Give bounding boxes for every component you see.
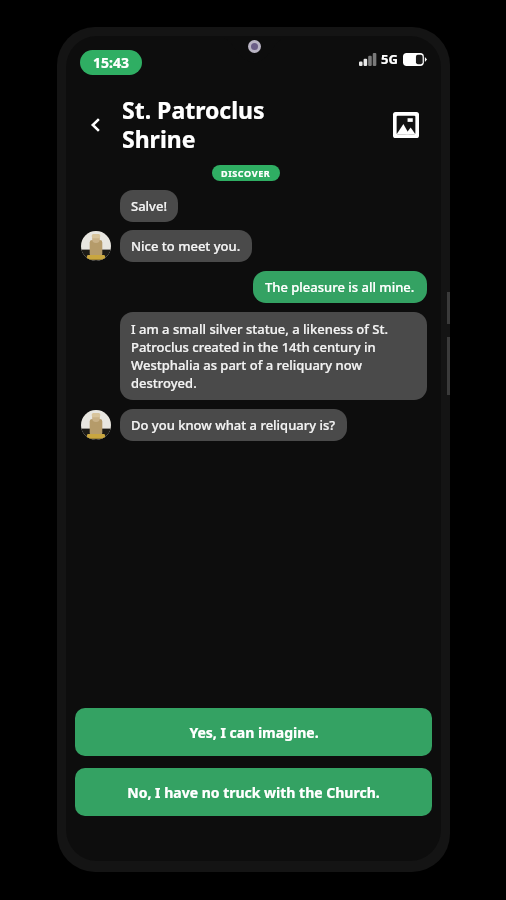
staticText: No, I have no truck with the Church. (127, 783, 380, 802)
staticText: 5G (381, 50, 398, 68)
staticText: 15:43 (93, 53, 129, 72)
staticText: Salve! (131, 197, 167, 215)
button[interactable]: I am a small silver statue, a likeness o… (120, 312, 427, 400)
button[interactable]: Yes, I can imagine. (75, 708, 432, 756)
staticText: DISCOVER (221, 167, 271, 179)
button[interactable]: Do you know what a reliquary is? (120, 409, 347, 441)
button[interactable]: The pleasure is all mine. (253, 271, 427, 303)
staticText: St. Patroclus Shrine (122, 94, 387, 155)
button[interactable]: Nice to meet you. (120, 230, 252, 262)
staticText: Nice to meet you. (131, 237, 241, 255)
button[interactable]: Back (76, 105, 116, 145)
staticText: The pleasure is all mine. (265, 278, 415, 296)
button[interactable]: Salve! (120, 190, 178, 222)
staticText: Yes, I can imagine. (189, 723, 319, 742)
button[interactable]: No, I have no truck with the Church. (75, 768, 432, 816)
button[interactable]: Show image (387, 106, 425, 144)
staticText: I am a small silver statue, a likeness o… (131, 320, 416, 392)
staticText: Do you know what a reliquary is? (131, 416, 336, 434)
